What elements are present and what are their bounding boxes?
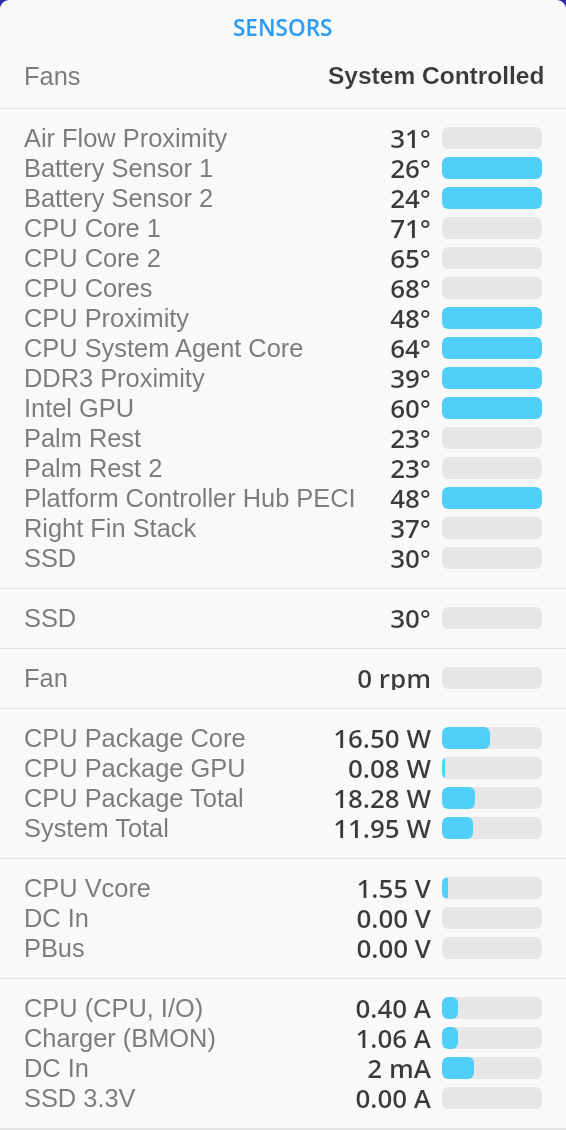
staticText: 24° xyxy=(390,180,431,210)
button[interactable]: Charger (BMON) xyxy=(0,1023,566,1053)
button[interactable]: CPU Package Total xyxy=(0,783,566,813)
staticText: 0.00 A xyxy=(355,1080,431,1110)
staticText: Palm Rest xyxy=(24,424,142,452)
other: Charger (BMON) level xyxy=(442,1027,542,1049)
staticText: Fan xyxy=(24,664,68,692)
button[interactable]: CPU Cores xyxy=(0,273,566,303)
button[interactable]: CPU Vcore xyxy=(0,873,566,903)
staticText: 68° xyxy=(390,270,431,300)
staticText: CPU Vcore xyxy=(24,874,151,902)
staticText: 60° xyxy=(390,390,431,420)
staticText: 65° xyxy=(390,240,431,270)
button[interactable]: Right Fin Stack xyxy=(0,513,566,543)
other: Platform Controller Hub PECI level xyxy=(442,487,542,509)
staticText: 0 rpm xyxy=(357,660,431,690)
staticText: SSD xyxy=(24,544,77,572)
staticText: 16.50 W xyxy=(333,720,431,750)
staticText: System Controlled xyxy=(328,62,545,89)
staticText: 23° xyxy=(390,450,431,480)
staticText: 31° xyxy=(390,120,431,150)
staticText: 26° xyxy=(390,150,431,180)
other: Battery Sensor 2 level xyxy=(442,187,542,209)
button[interactable]: CPU Proximity xyxy=(0,303,566,333)
other: CPU Package GPU level xyxy=(442,757,542,779)
staticText: CPU Cores xyxy=(24,274,153,302)
staticText: CPU (CPU, I/O) xyxy=(24,994,204,1022)
staticText: Fans xyxy=(24,62,81,90)
staticText: Intel GPU xyxy=(24,394,135,422)
other: CPU System Agent Core level xyxy=(442,337,542,359)
staticText: CPU System Agent Core xyxy=(24,334,304,362)
staticText: DC In xyxy=(24,904,89,932)
staticText: Battery Sensor 2 xyxy=(24,184,214,212)
staticText: DDR3 Proximity xyxy=(24,364,205,392)
staticText: 37° xyxy=(390,510,431,540)
button[interactable]: Air Flow Proximity xyxy=(0,123,566,153)
button[interactable]: SSD xyxy=(0,603,566,633)
staticText: 0.00 V xyxy=(356,900,431,930)
staticText: 71° xyxy=(390,210,431,240)
staticText: 30° xyxy=(390,540,431,570)
other: CPU Proximity level xyxy=(442,307,542,329)
button[interactable]: CPU System Agent Core xyxy=(0,333,566,363)
staticText: CPU Package GPU xyxy=(24,754,246,782)
staticText: 48° xyxy=(390,480,431,510)
button[interactable]: DC In xyxy=(0,903,566,933)
staticText: 39° xyxy=(390,360,431,390)
button[interactable]: CPU (CPU, I/O) xyxy=(0,993,566,1023)
button[interactable]: SENSORS xyxy=(0,6,566,48)
button[interactable]: CPU Package Core xyxy=(0,723,566,753)
staticText: 0.40 A xyxy=(355,990,431,1020)
staticText: 48° xyxy=(390,300,431,330)
button[interactable]: Battery Sensor 1 xyxy=(0,153,566,183)
button[interactable]: SSD xyxy=(0,543,566,573)
button[interactable]: Platform Controller Hub PECI xyxy=(0,483,566,513)
button[interactable]: Intel GPU xyxy=(0,393,566,423)
button[interactable]: Fans xyxy=(0,48,566,108)
button[interactable]: Palm Rest 2 xyxy=(0,453,566,483)
staticText: 18.28 W xyxy=(333,780,431,810)
staticText: CPU Package Total xyxy=(24,784,244,812)
staticText: System Total xyxy=(24,814,169,842)
staticText: Charger (BMON) xyxy=(24,1024,216,1052)
staticText: CPU Package Core xyxy=(24,724,246,752)
staticText: Air Flow Proximity xyxy=(24,124,228,152)
button[interactable]: CPU Core 2 xyxy=(0,243,566,273)
button[interactable]: CPU Core 1 xyxy=(0,213,566,243)
button[interactable]: DC In xyxy=(0,1053,566,1083)
staticText: 2 mA xyxy=(367,1050,431,1080)
other: System Total level xyxy=(442,817,542,839)
button[interactable]: System Total xyxy=(0,813,566,843)
other: DC In level xyxy=(442,1057,542,1079)
other: CPU Vcore level xyxy=(442,877,542,899)
button[interactable]: SSD 3.3V xyxy=(0,1083,566,1113)
button[interactable]: DDR3 Proximity xyxy=(0,363,566,393)
staticText: 0.00 V xyxy=(356,930,431,960)
staticText: Platform Controller Hub PECI xyxy=(24,484,356,512)
staticText: CPU Core 2 xyxy=(24,244,161,272)
other: CPU Package Total level xyxy=(442,787,542,809)
staticText: 23° xyxy=(390,420,431,450)
staticText: 11.95 W xyxy=(333,810,431,840)
staticText: 1.55 V xyxy=(356,870,431,900)
staticText: DC In xyxy=(24,1054,89,1082)
button[interactable]: CPU Package GPU xyxy=(0,753,566,783)
button[interactable]: Fan xyxy=(0,663,566,693)
button[interactable]: PBus xyxy=(0,933,566,963)
staticText: Right Fin Stack xyxy=(24,514,197,542)
staticText: SSD 3.3V xyxy=(24,1084,136,1112)
button[interactable]: Palm Rest xyxy=(0,423,566,453)
staticText: Battery Sensor 1 xyxy=(24,154,214,182)
button[interactable]: Battery Sensor 2 xyxy=(0,183,566,213)
